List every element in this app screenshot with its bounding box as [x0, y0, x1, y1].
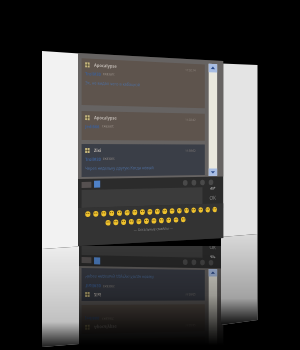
- staticText: сказал:: [102, 123, 114, 128]
- staticText: Эх, не видал чего в кабацкой: [85, 79, 140, 87]
- staticText: Zixi: [94, 147, 102, 153]
- staticText: сказал:: [103, 156, 115, 161]
- button[interactable]: Apocalypse: [82, 111, 205, 141]
- button[interactable]: Tool: [209, 179, 213, 185]
- button[interactable]: Tool: [183, 180, 188, 186]
- staticText: Apocalypse: [94, 62, 117, 69]
- button[interactable]: OK: [209, 246, 216, 251]
- button[interactable]: Tool: [192, 259, 196, 265]
- button[interactable]: Tool: [209, 260, 213, 265]
- staticText: 11:03:02: [185, 293, 196, 297]
- button[interactable]: Tool: [192, 180, 196, 185]
- staticText: 11:03:02: [185, 148, 196, 152]
- button[interactable]: Scroll: [209, 269, 217, 345]
- button[interactable]: Zixi: [82, 268, 205, 301]
- staticText: Apocalypse: [94, 324, 117, 331]
- staticText: OK: [209, 194, 216, 202]
- button[interactable]: OK: [209, 194, 216, 202]
- staticText: сказал:: [102, 317, 114, 322]
- staticText: OK: [209, 246, 216, 251]
- button[interactable]: [82, 187, 202, 208]
- staticText: сказал:: [103, 71, 115, 76]
- button[interactable]: Apocalypse: [82, 58, 205, 108]
- staticText: Jedi666: [85, 316, 100, 322]
- staticText: Apocalypse: [94, 114, 117, 121]
- staticText: Через недельку другую.Когда новый: [85, 164, 154, 171]
- button[interactable]: [82, 246, 202, 258]
- button[interactable]: Zixi: [82, 144, 205, 177]
- staticText: сказал:: [103, 284, 115, 289]
- staticText: 11:02:14: [185, 67, 196, 72]
- button[interactable]: Tool: [183, 259, 188, 265]
- staticText: Jedi666: [85, 123, 100, 129]
- staticText: Troll#30: [85, 156, 101, 162]
- button[interactable]: Insert smiley: [94, 181, 100, 188]
- staticText: --- Остальные смайлы ---: [134, 226, 173, 232]
- staticText: Troll#30: [85, 70, 101, 77]
- staticText: Zixi: [94, 292, 102, 298]
- button[interactable]: Tool: [200, 180, 205, 185]
- staticText: Через недельку другую.Когда новый: [85, 274, 154, 281]
- staticText: Troll#30: [85, 283, 101, 289]
- button[interactable]: Apocalypse: [82, 304, 205, 334]
- button[interactable]: Tool: [200, 260, 205, 265]
- button[interactable]: Scroll: [209, 64, 217, 176]
- staticText: 49*: [210, 254, 216, 259]
- staticText: 49*: [210, 186, 216, 191]
- staticText: 11:02:42: [185, 117, 196, 121]
- button[interactable]: Insert smiley: [94, 257, 100, 264]
